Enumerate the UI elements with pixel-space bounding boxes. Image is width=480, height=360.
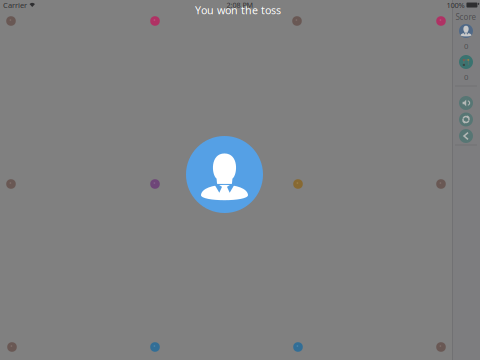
staticText: Score — [455, 12, 476, 22]
button[interactable]: Back — [459, 129, 473, 143]
staticText: 0 — [464, 72, 468, 82]
staticText: Carrier — [3, 0, 27, 10]
button[interactable]: Restart — [459, 112, 473, 126]
button[interactable]: Your score — [459, 24, 473, 38]
staticText: 2:08 PM — [226, 0, 253, 10]
staticText: 100% — [446, 0, 464, 10]
button[interactable]: Sound — [459, 96, 473, 110]
staticText: You won the toss — [195, 3, 281, 17]
button[interactable]: Opponent score — [459, 55, 473, 69]
staticText: 0 — [464, 41, 468, 51]
